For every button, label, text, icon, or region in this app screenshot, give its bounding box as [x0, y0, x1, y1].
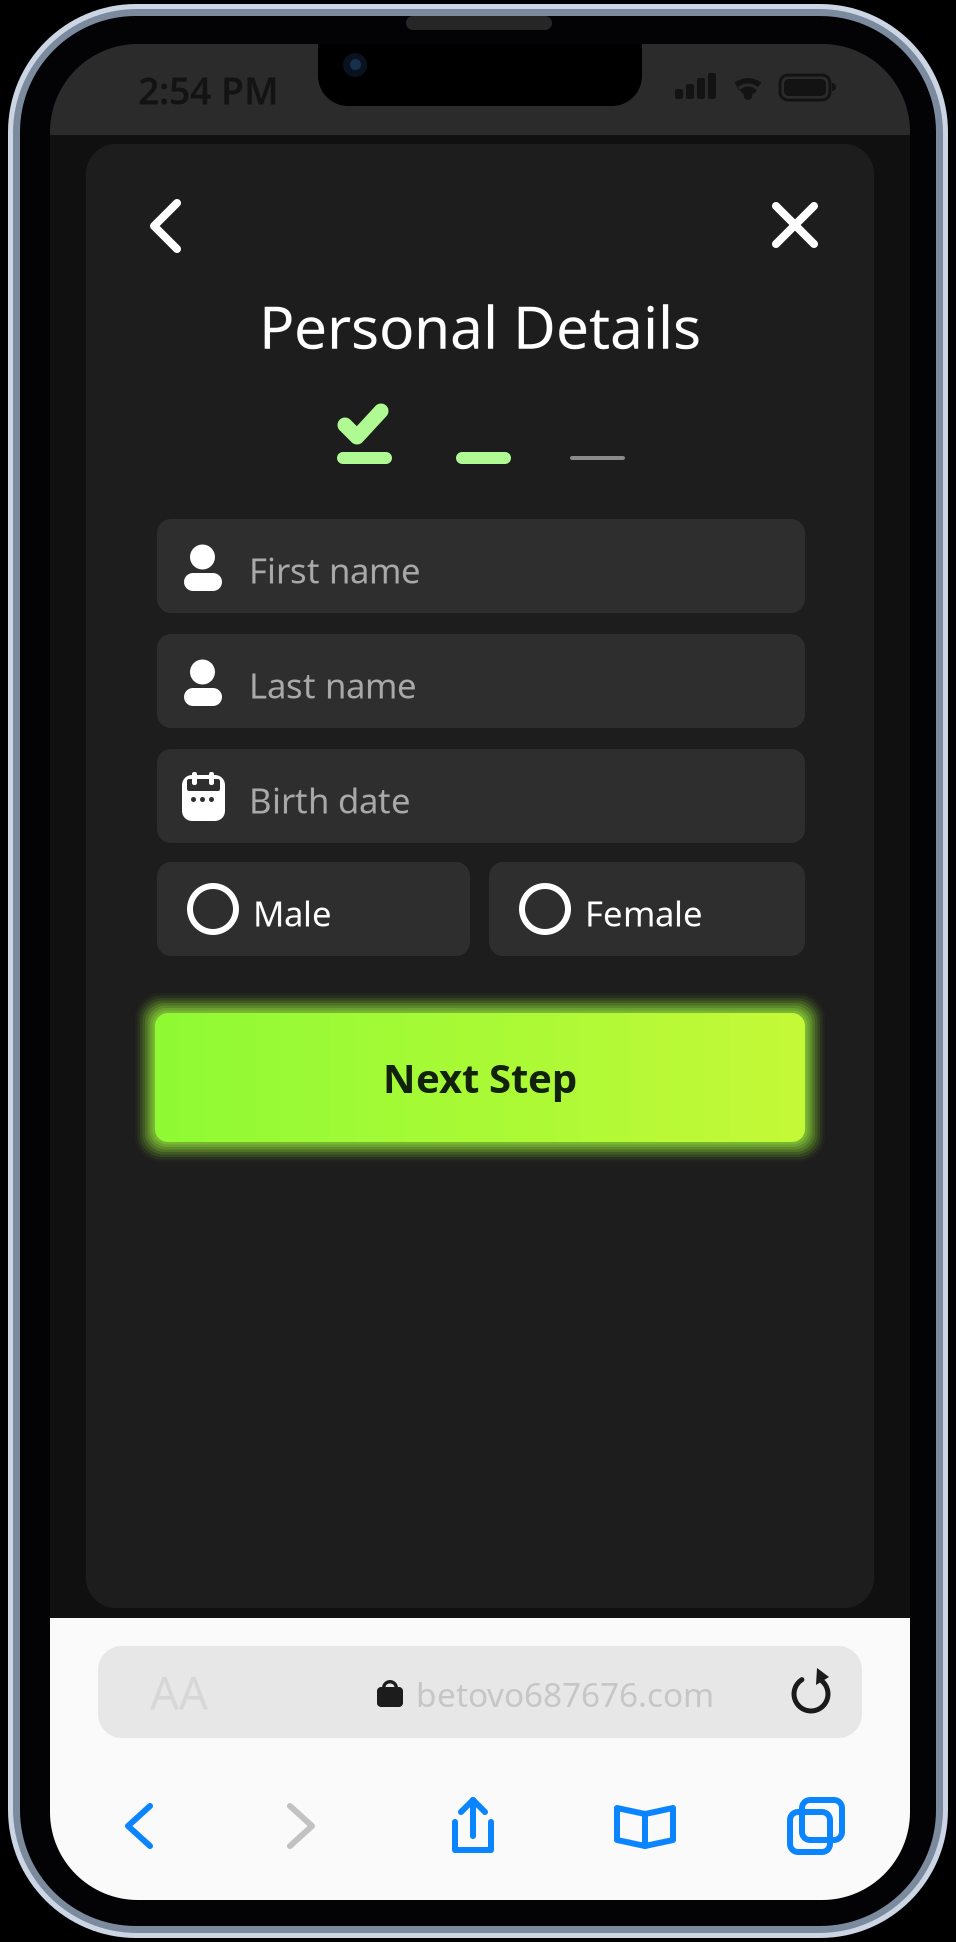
staticText: Male	[253, 890, 332, 936]
staticText: First name	[249, 547, 421, 593]
button[interactable]: Male	[157, 862, 470, 956]
staticText: betovo687676.com	[416, 1672, 714, 1716]
staticText: Last name	[249, 662, 417, 708]
button[interactable]: Birth date	[157, 749, 805, 843]
staticText: Next Step	[383, 1051, 577, 1104]
button[interactable]: Female	[489, 862, 805, 956]
button[interactable]: First name	[157, 519, 805, 613]
staticText: Female	[585, 890, 703, 936]
button[interactable]: Back	[96, 1782, 182, 1868]
button[interactable]: AA	[98, 1646, 862, 1738]
staticText: Personal Details	[259, 287, 701, 365]
staticText: 2:54 PM	[138, 65, 279, 115]
button[interactable]: Forward	[258, 1782, 344, 1868]
button[interactable]: Last name	[157, 634, 805, 728]
button[interactable]: Tabs	[774, 1782, 860, 1868]
button[interactable]: Next Step	[135, 993, 825, 1162]
staticText: AA	[150, 1662, 208, 1722]
button[interactable]: Bookmarks	[602, 1782, 688, 1868]
button[interactable]: Share	[430, 1782, 516, 1868]
staticText: Birth date	[249, 777, 411, 823]
button[interactable]: Close	[745, 175, 845, 275]
button[interactable]: Back	[115, 175, 215, 275]
